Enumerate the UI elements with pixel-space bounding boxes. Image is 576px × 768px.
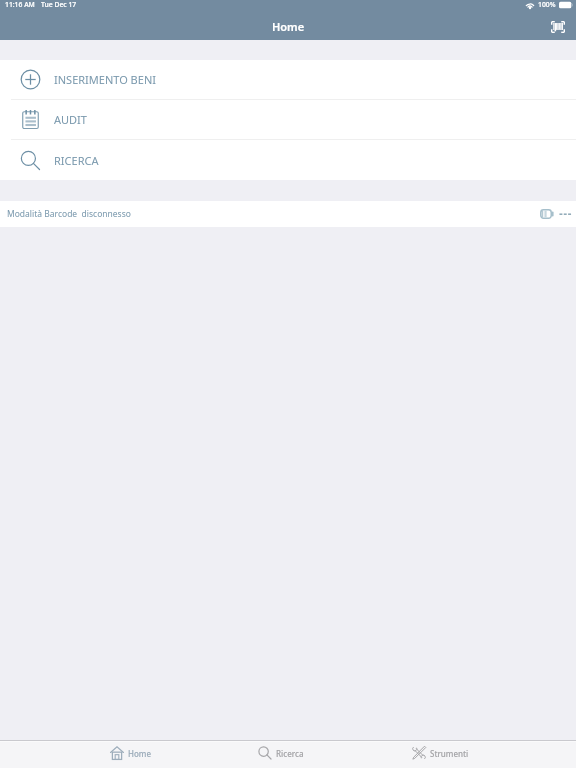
button[interactable]: Strumenti bbox=[412, 740, 469, 766]
staticText: Strumenti bbox=[430, 748, 469, 759]
button[interactable]: Modalità Barcode disconnesso bbox=[0, 201, 576, 227]
button[interactable]: Scan barcode bbox=[547, 16, 569, 38]
staticText: Modalità Barcode disconnesso bbox=[7, 208, 131, 220]
staticText: INSERIMENTO BENI bbox=[54, 72, 156, 87]
staticText: RICERCA bbox=[54, 153, 99, 168]
staticText: Ricerca bbox=[276, 748, 304, 759]
staticText: Home bbox=[272, 19, 305, 34]
button[interactable]: Ricerca bbox=[258, 740, 304, 766]
staticText: 100% bbox=[538, 0, 556, 9]
staticText: Home bbox=[128, 748, 152, 759]
staticText: AUDIT bbox=[54, 112, 87, 127]
button[interactable]: AUDIT bbox=[0, 100, 576, 139]
button[interactable]: RICERCA bbox=[0, 140, 576, 180]
button[interactable]: Home bbox=[110, 740, 152, 766]
button[interactable]: INSERIMENTO BENI bbox=[0, 60, 576, 99]
staticText: Tue Dec 17 bbox=[41, 0, 77, 9]
staticText: 11:16 AM bbox=[5, 0, 35, 9]
